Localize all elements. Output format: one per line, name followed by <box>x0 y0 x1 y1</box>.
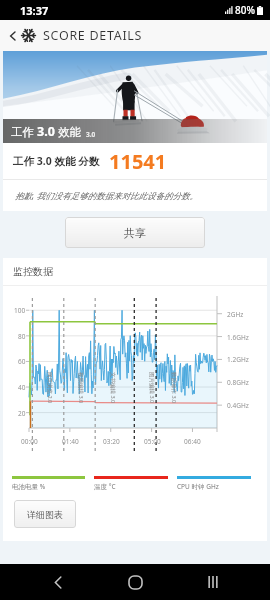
button[interactable]: 详细图表 <box>14 500 76 528</box>
staticText: 80 <box>18 332 26 341</box>
staticText: 01:40 <box>62 437 79 446</box>
staticText: 1.2GHz <box>227 355 249 364</box>
staticText: 网页浏览 2.0 <box>46 372 54 404</box>
staticText: CPU 时钟 GHz <box>177 482 219 491</box>
staticText: 11541 <box>109 148 167 175</box>
staticText: 工作 3.0 效能 分数 <box>13 154 100 168</box>
button[interactable]: Back <box>38 564 78 600</box>
button[interactable]: Back <box>4 27 21 44</box>
staticText: 共享 <box>124 226 146 240</box>
staticText: 文书编辑 3.0 <box>109 372 117 404</box>
staticText: 抱歉, 我们没有足够的数据来对比此设备的分数。 <box>15 190 198 202</box>
staticText: 40 <box>18 383 26 392</box>
staticText: 05:00 <box>144 437 161 446</box>
staticText: 00:00 <box>21 437 38 446</box>
staticText: 视频编辑 3.0 <box>77 372 85 404</box>
staticText: 温度 °C <box>94 482 116 491</box>
staticText: 06:40 <box>184 437 201 446</box>
staticText: 详细图表 <box>27 509 63 520</box>
staticText: 3.0 <box>86 130 96 139</box>
staticText: 1.6GHz <box>227 333 249 342</box>
staticText: SCORE DETAILS <box>43 27 143 44</box>
staticText: 0.4GHz <box>227 401 249 410</box>
staticText: 效能 <box>55 124 81 140</box>
staticText: 13:37 <box>20 3 49 18</box>
staticText: 100 <box>14 306 26 315</box>
staticText: 0.8GHz <box>227 378 249 387</box>
staticText: 3.0 <box>37 123 55 140</box>
staticText: 2GHz <box>227 310 244 319</box>
staticText: 图片编辑 3.0 <box>148 372 156 404</box>
staticText: 80% <box>235 3 255 17</box>
staticText: 60 <box>18 357 26 366</box>
button[interactable]: 共享 <box>65 217 205 248</box>
button[interactable]: Home <box>115 564 155 600</box>
staticText: 工作 <box>11 124 37 140</box>
staticText: 03:20 <box>103 437 120 446</box>
staticText: 20 <box>18 409 26 418</box>
staticText: 数据操作 3.0 <box>170 372 178 404</box>
staticText: 监控数据 <box>13 265 53 278</box>
button[interactable]: Recents <box>193 564 233 600</box>
staticText: 电池电量 % <box>12 482 46 491</box>
